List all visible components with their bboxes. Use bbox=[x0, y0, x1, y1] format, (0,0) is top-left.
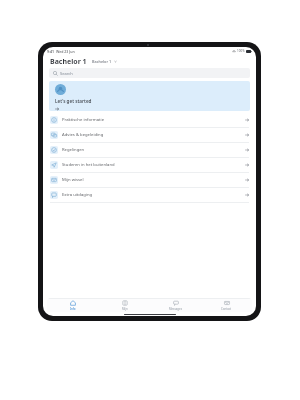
button[interactable]: Studeren in het buitenland bbox=[43, 158, 256, 172]
button[interactable]: Mijn wissel bbox=[43, 173, 256, 187]
button[interactable]: Regelingen bbox=[43, 143, 256, 157]
button[interactable]: Contact bbox=[201, 298, 252, 312]
button[interactable]: Bachelor 1 bbox=[91, 58, 118, 65]
button[interactable]: Info bbox=[47, 298, 99, 312]
button[interactable]: Search bbox=[49, 68, 250, 78]
staticText: Extra uitdaging bbox=[62, 192, 93, 198]
staticText: Studeren in het buitenland bbox=[62, 162, 115, 168]
button[interactable]: Praktische informatie bbox=[43, 113, 256, 127]
button[interactable]: Let's get started bbox=[49, 81, 250, 111]
staticText: Contact bbox=[221, 307, 232, 311]
staticText: Search bbox=[60, 71, 73, 76]
button[interactable]: Mijn bbox=[99, 298, 150, 312]
button[interactable]: Messages bbox=[150, 298, 201, 312]
staticText: Mijn bbox=[122, 307, 128, 311]
staticText: Bachelor 1 bbox=[92, 59, 112, 64]
staticText: Regelingen bbox=[62, 147, 85, 153]
staticText: Bachelor 1 bbox=[50, 57, 87, 67]
staticText: Praktische informatie bbox=[62, 117, 105, 123]
button[interactable]: Advies & begeleiding bbox=[43, 128, 256, 142]
staticText: Info bbox=[70, 307, 76, 311]
staticText: Wed 23 Jun bbox=[56, 49, 75, 54]
staticText: Advies & begeleiding bbox=[62, 132, 104, 138]
button[interactable]: Extra uitdaging bbox=[43, 188, 256, 202]
staticText: 9:41 bbox=[47, 49, 54, 54]
staticText: 100% bbox=[237, 49, 245, 53]
staticText: Let's get started bbox=[55, 98, 92, 104]
staticText: Mijn wissel bbox=[62, 177, 84, 183]
staticText: Messages bbox=[169, 307, 182, 311]
